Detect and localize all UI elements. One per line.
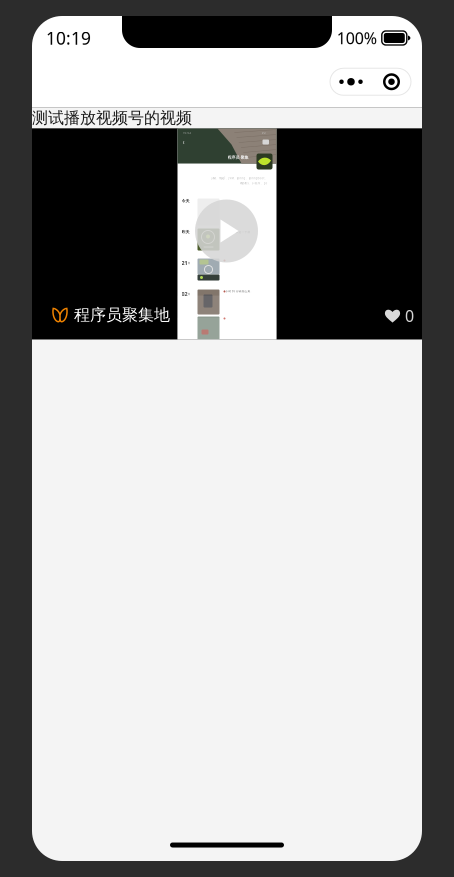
staticText: 今天	[181, 198, 189, 203]
staticText: 日	[187, 292, 190, 296]
staticText: 日	[187, 261, 190, 265]
staticText: 0	[405, 305, 414, 326]
staticText: java、mysql、JVM、Spring、SpringBoot、	[211, 176, 267, 180]
staticText: ‹	[182, 137, 184, 146]
staticText: MyBatis、小程序、go	[239, 181, 267, 185]
staticText: 02	[181, 290, 187, 298]
staticText: 100%	[337, 27, 377, 49]
button[interactable]: More options	[330, 68, 372, 95]
staticText: 21	[181, 259, 187, 267]
staticText: 小日子、来这一下前	[223, 230, 250, 234]
staticText: 测试播放视频号的视频	[32, 108, 192, 128]
staticText: 昨天	[181, 229, 189, 234]
staticText: 程序员聚集地	[74, 305, 170, 325]
button[interactable]: Close mini program	[372, 68, 411, 95]
staticText: 1小时30分钟前山风.	[223, 289, 251, 293]
staticText: 10:19	[46, 26, 91, 49]
staticText: 10:02	[182, 131, 191, 134]
staticText: 4G	[261, 131, 265, 134]
staticText: 程序员·聚集	[227, 154, 248, 160]
button[interactable]: Play video from 程序员聚集地	[32, 128, 422, 339]
